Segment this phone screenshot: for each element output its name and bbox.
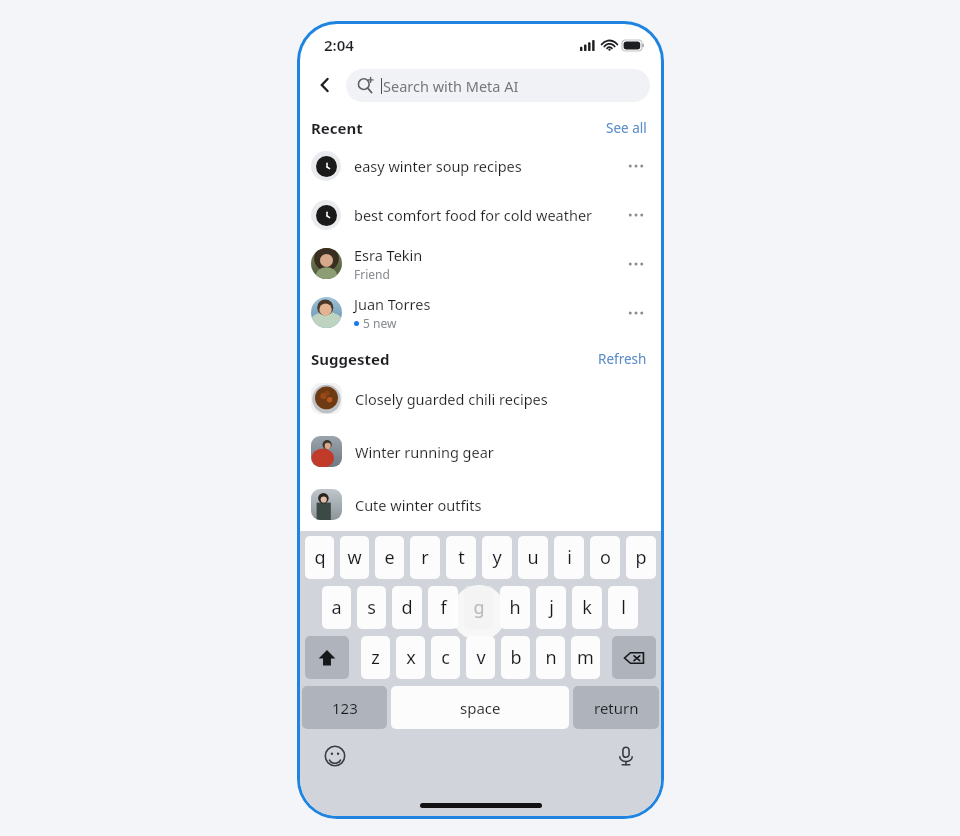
button[interactable]: j [536, 586, 566, 629]
button[interactable]: i [554, 536, 584, 579]
button[interactable]: t [446, 536, 476, 579]
staticText: p [635, 545, 647, 570]
staticText: v [476, 645, 486, 670]
button[interactable]: e [375, 536, 404, 579]
staticText: Recent [311, 118, 363, 138]
button[interactable]: Emoji [320, 741, 350, 771]
button[interactable]: b [501, 636, 530, 679]
button[interactable]: f [428, 586, 458, 629]
staticText: q [314, 545, 326, 570]
staticText: c [441, 645, 450, 670]
button[interactable]: See all [604, 119, 649, 137]
button[interactable]: Back [310, 70, 340, 100]
staticText: return [594, 698, 639, 718]
button[interactable]: More options [623, 300, 649, 326]
staticText: 123 [332, 698, 358, 718]
staticText: y [492, 545, 502, 570]
button[interactable]: Juan Torres [300, 288, 661, 337]
staticText: 2:04 [324, 35, 354, 55]
button[interactable]: r [410, 536, 440, 579]
staticText: best comfort food for cold weather [354, 205, 593, 225]
button[interactable]: More options [623, 153, 649, 179]
button[interactable]: o [590, 536, 620, 579]
button[interactable]: x [396, 636, 425, 679]
button[interactable]: Search with Meta AI [346, 69, 650, 102]
button[interactable]: w [340, 536, 369, 579]
staticText: Winter running gear [355, 442, 494, 462]
staticText: k [582, 595, 592, 620]
staticText: Cute winter outfits [355, 495, 482, 515]
button[interactable]: n [536, 636, 565, 679]
button[interactable]: Refresh [596, 350, 649, 368]
staticText: j [549, 595, 554, 620]
staticText: r [421, 545, 429, 570]
button[interactable]: Cute winter outfits [300, 478, 661, 531]
staticText: d [401, 595, 413, 620]
button[interactable]: m [571, 636, 600, 679]
staticText: u [527, 545, 539, 570]
staticText: o [600, 545, 611, 570]
button[interactable]: best comfort food for cold weather [300, 190, 661, 239]
button[interactable]: More options [623, 251, 649, 277]
staticText: Closely guarded chili recipes [355, 389, 548, 409]
button[interactable]: More options [623, 202, 649, 228]
button[interactable]: y [482, 536, 512, 579]
button[interactable]: h [500, 586, 530, 629]
button[interactable]: k [572, 586, 602, 629]
button[interactable]: Dictate [611, 741, 641, 771]
button[interactable]: Shift [305, 636, 349, 679]
staticText: e [384, 545, 395, 570]
staticText: s [367, 595, 376, 620]
staticText: Friend [354, 266, 390, 282]
button[interactable]: u [518, 536, 548, 579]
staticText: f [440, 595, 447, 620]
button[interactable]: c [431, 636, 460, 679]
button[interactable]: z [361, 636, 390, 679]
staticText: x [406, 645, 416, 670]
staticText: n [545, 645, 557, 670]
button[interactable]: v [466, 636, 495, 679]
staticText: 5 new [363, 315, 397, 331]
button[interactable]: Esra Tekin [300, 239, 661, 288]
button[interactable]: q [305, 536, 334, 579]
staticText: Search with Meta AI [383, 76, 519, 96]
staticText: Juan Torres [354, 294, 431, 314]
button[interactable]: 123 [302, 686, 387, 729]
button[interactable]: p [626, 536, 656, 579]
staticText: Refresh [598, 350, 647, 368]
button[interactable]: s [357, 586, 386, 629]
staticText: l [621, 595, 626, 620]
button[interactable]: g [464, 586, 494, 629]
button[interactable]: return [573, 686, 659, 729]
button[interactable]: Backspace [612, 636, 656, 679]
staticText: t [458, 545, 465, 570]
staticText: b [510, 645, 522, 670]
staticText: Esra Tekin [354, 245, 423, 265]
staticText: easy winter soup recipes [354, 156, 522, 176]
button[interactable]: d [392, 586, 422, 629]
button[interactable]: easy winter soup recipes [300, 141, 661, 190]
staticText: m [577, 645, 594, 670]
staticText: space [460, 698, 501, 718]
staticText: w [347, 545, 362, 570]
button[interactable]: Winter running gear [300, 425, 661, 478]
staticText: Suggested [311, 349, 390, 369]
button[interactable]: l [608, 586, 638, 629]
staticText: i [567, 545, 572, 570]
staticText: g [473, 595, 485, 620]
button[interactable]: Closely guarded chili recipes [300, 372, 661, 425]
button[interactable]: space [391, 686, 569, 729]
button[interactable]: a [322, 586, 351, 629]
staticText: h [509, 595, 521, 620]
staticText: See all [606, 119, 647, 137]
staticText: a [331, 595, 342, 620]
staticText: z [371, 645, 380, 670]
